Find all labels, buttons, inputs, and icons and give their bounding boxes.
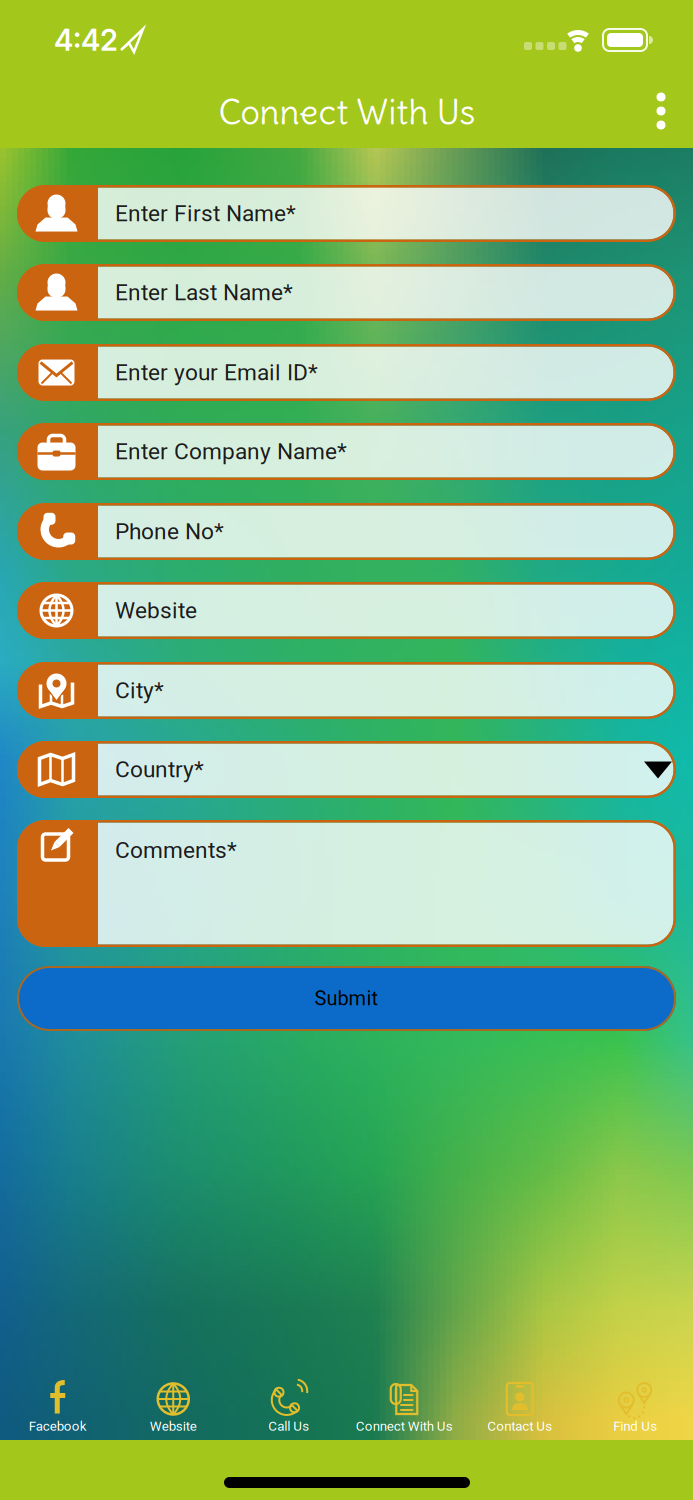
button[interactable]: Enter your Email ID* bbox=[17, 344, 676, 401]
staticText: 4:42 bbox=[54, 22, 118, 58]
staticText: Contact Us bbox=[487, 1418, 552, 1434]
staticText: Call Us bbox=[268, 1418, 309, 1434]
button[interactable]: Phone No* bbox=[17, 503, 676, 560]
staticText: Website bbox=[115, 597, 197, 624]
staticText: Phone No* bbox=[115, 518, 224, 545]
staticText: Enter your Email ID* bbox=[115, 359, 318, 386]
button[interactable]: Facebook bbox=[0, 1376, 115, 1440]
button[interactable]: More options bbox=[639, 87, 683, 135]
button[interactable]: Enter Last Name* bbox=[17, 264, 676, 321]
button[interactable]: Website bbox=[115, 1376, 231, 1440]
button[interactable]: Submit bbox=[17, 966, 676, 1031]
staticText: Connect With Us bbox=[218, 90, 475, 134]
button[interactable]: City* bbox=[17, 662, 676, 719]
staticText: Enter Last Name* bbox=[115, 279, 293, 306]
staticText: Enter First Name* bbox=[115, 200, 296, 227]
button[interactable]: Contact Us bbox=[462, 1376, 577, 1440]
staticText: Connect With Us bbox=[356, 1418, 453, 1434]
staticText: Find Us bbox=[613, 1418, 657, 1434]
button[interactable]: Connect With Us bbox=[346, 1376, 462, 1440]
button[interactable]: Comments* bbox=[17, 820, 676, 947]
staticText: Facebook bbox=[29, 1418, 87, 1434]
button[interactable]: Website bbox=[17, 582, 676, 639]
staticText: Comments* bbox=[115, 837, 237, 864]
button[interactable]: Find Us bbox=[577, 1376, 693, 1440]
staticText: Enter Company Name* bbox=[115, 438, 347, 465]
button[interactable]: Enter Company Name* bbox=[17, 423, 676, 480]
staticText: City* bbox=[115, 677, 164, 704]
button[interactable]: Country* bbox=[17, 741, 676, 798]
button[interactable]: Enter First Name* bbox=[17, 185, 676, 242]
staticText: Website bbox=[150, 1418, 197, 1434]
button[interactable]: Call Us bbox=[231, 1376, 346, 1440]
staticText: Country* bbox=[115, 756, 204, 783]
staticText: Submit bbox=[314, 987, 378, 1010]
